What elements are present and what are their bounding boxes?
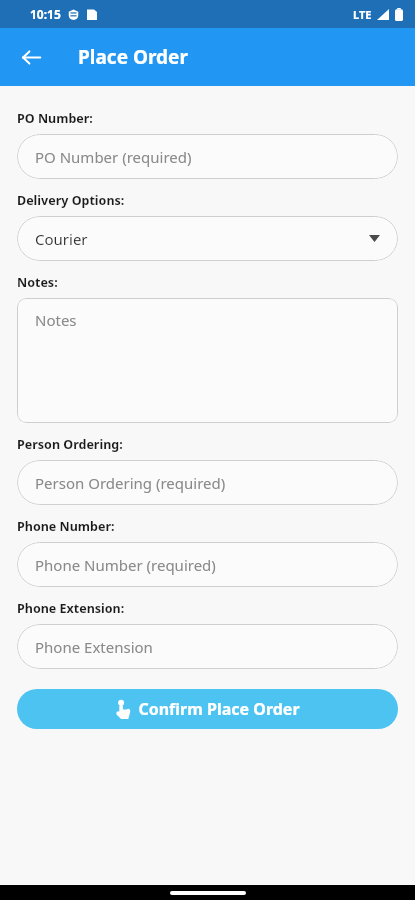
staticText: Place Order	[78, 44, 188, 70]
staticText: Notes:	[17, 274, 58, 291]
staticText: Person Ordering (required)	[35, 473, 226, 493]
staticText: Phone Extension	[35, 637, 153, 657]
staticText: Phone Number:	[17, 518, 115, 535]
staticText: PO Number (required)	[35, 147, 192, 167]
staticText: Person Ordering:	[17, 436, 123, 453]
button[interactable]: Phone Extension	[17, 624, 398, 669]
button[interactable]: Courier	[17, 216, 398, 261]
staticText: Phone Number (required)	[35, 555, 216, 575]
button[interactable]: Confirm Place Order	[17, 689, 398, 729]
button[interactable]: Notes	[17, 298, 398, 423]
staticText: Notes	[35, 310, 77, 330]
button[interactable]: Phone Number (required)	[17, 542, 398, 587]
staticText: 10:15	[30, 6, 61, 22]
staticText: Delivery Options:	[17, 192, 125, 209]
button[interactable]: Person Ordering (required)	[17, 460, 398, 505]
staticText: PO Number:	[17, 110, 93, 127]
staticText: Courier	[35, 229, 88, 249]
staticText: Phone Extension:	[17, 600, 125, 617]
button[interactable]: Back	[14, 40, 48, 74]
button[interactable]: PO Number (required)	[17, 134, 398, 179]
staticText: LTE	[353, 7, 372, 22]
staticText: Confirm Place Order	[138, 698, 300, 720]
